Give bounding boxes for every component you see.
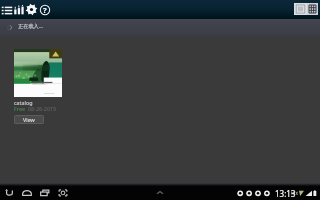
button[interactable]: View bbox=[14, 115, 44, 124]
staticText: 13:13 bbox=[275, 188, 296, 199]
button[interactable]: Home bbox=[21, 187, 33, 199]
button[interactable]: catalog cover bbox=[14, 49, 62, 97]
staticText: Free bbox=[14, 105, 25, 112]
button[interactable]: Statistics bbox=[13, 4, 25, 16]
button[interactable]: Expand bbox=[153, 186, 167, 200]
staticText: 08-26-2015 bbox=[28, 105, 57, 112]
button[interactable]: Settings bbox=[25, 3, 38, 16]
button[interactable]: Help bbox=[39, 4, 51, 16]
button[interactable]: Screenshot bbox=[57, 187, 69, 199]
staticText: ? bbox=[43, 5, 47, 15]
staticText: View bbox=[23, 116, 35, 123]
button[interactable]: Menu bbox=[1, 4, 13, 16]
button[interactable]: Apps bbox=[307, 3, 318, 15]
button[interactable]: Window bbox=[294, 3, 307, 15]
staticText: catalog bbox=[14, 99, 33, 106]
staticText: 正在载入... bbox=[18, 22, 43, 29]
button[interactable]: Back bbox=[3, 187, 15, 199]
button[interactable]: Recent apps bbox=[39, 187, 51, 199]
